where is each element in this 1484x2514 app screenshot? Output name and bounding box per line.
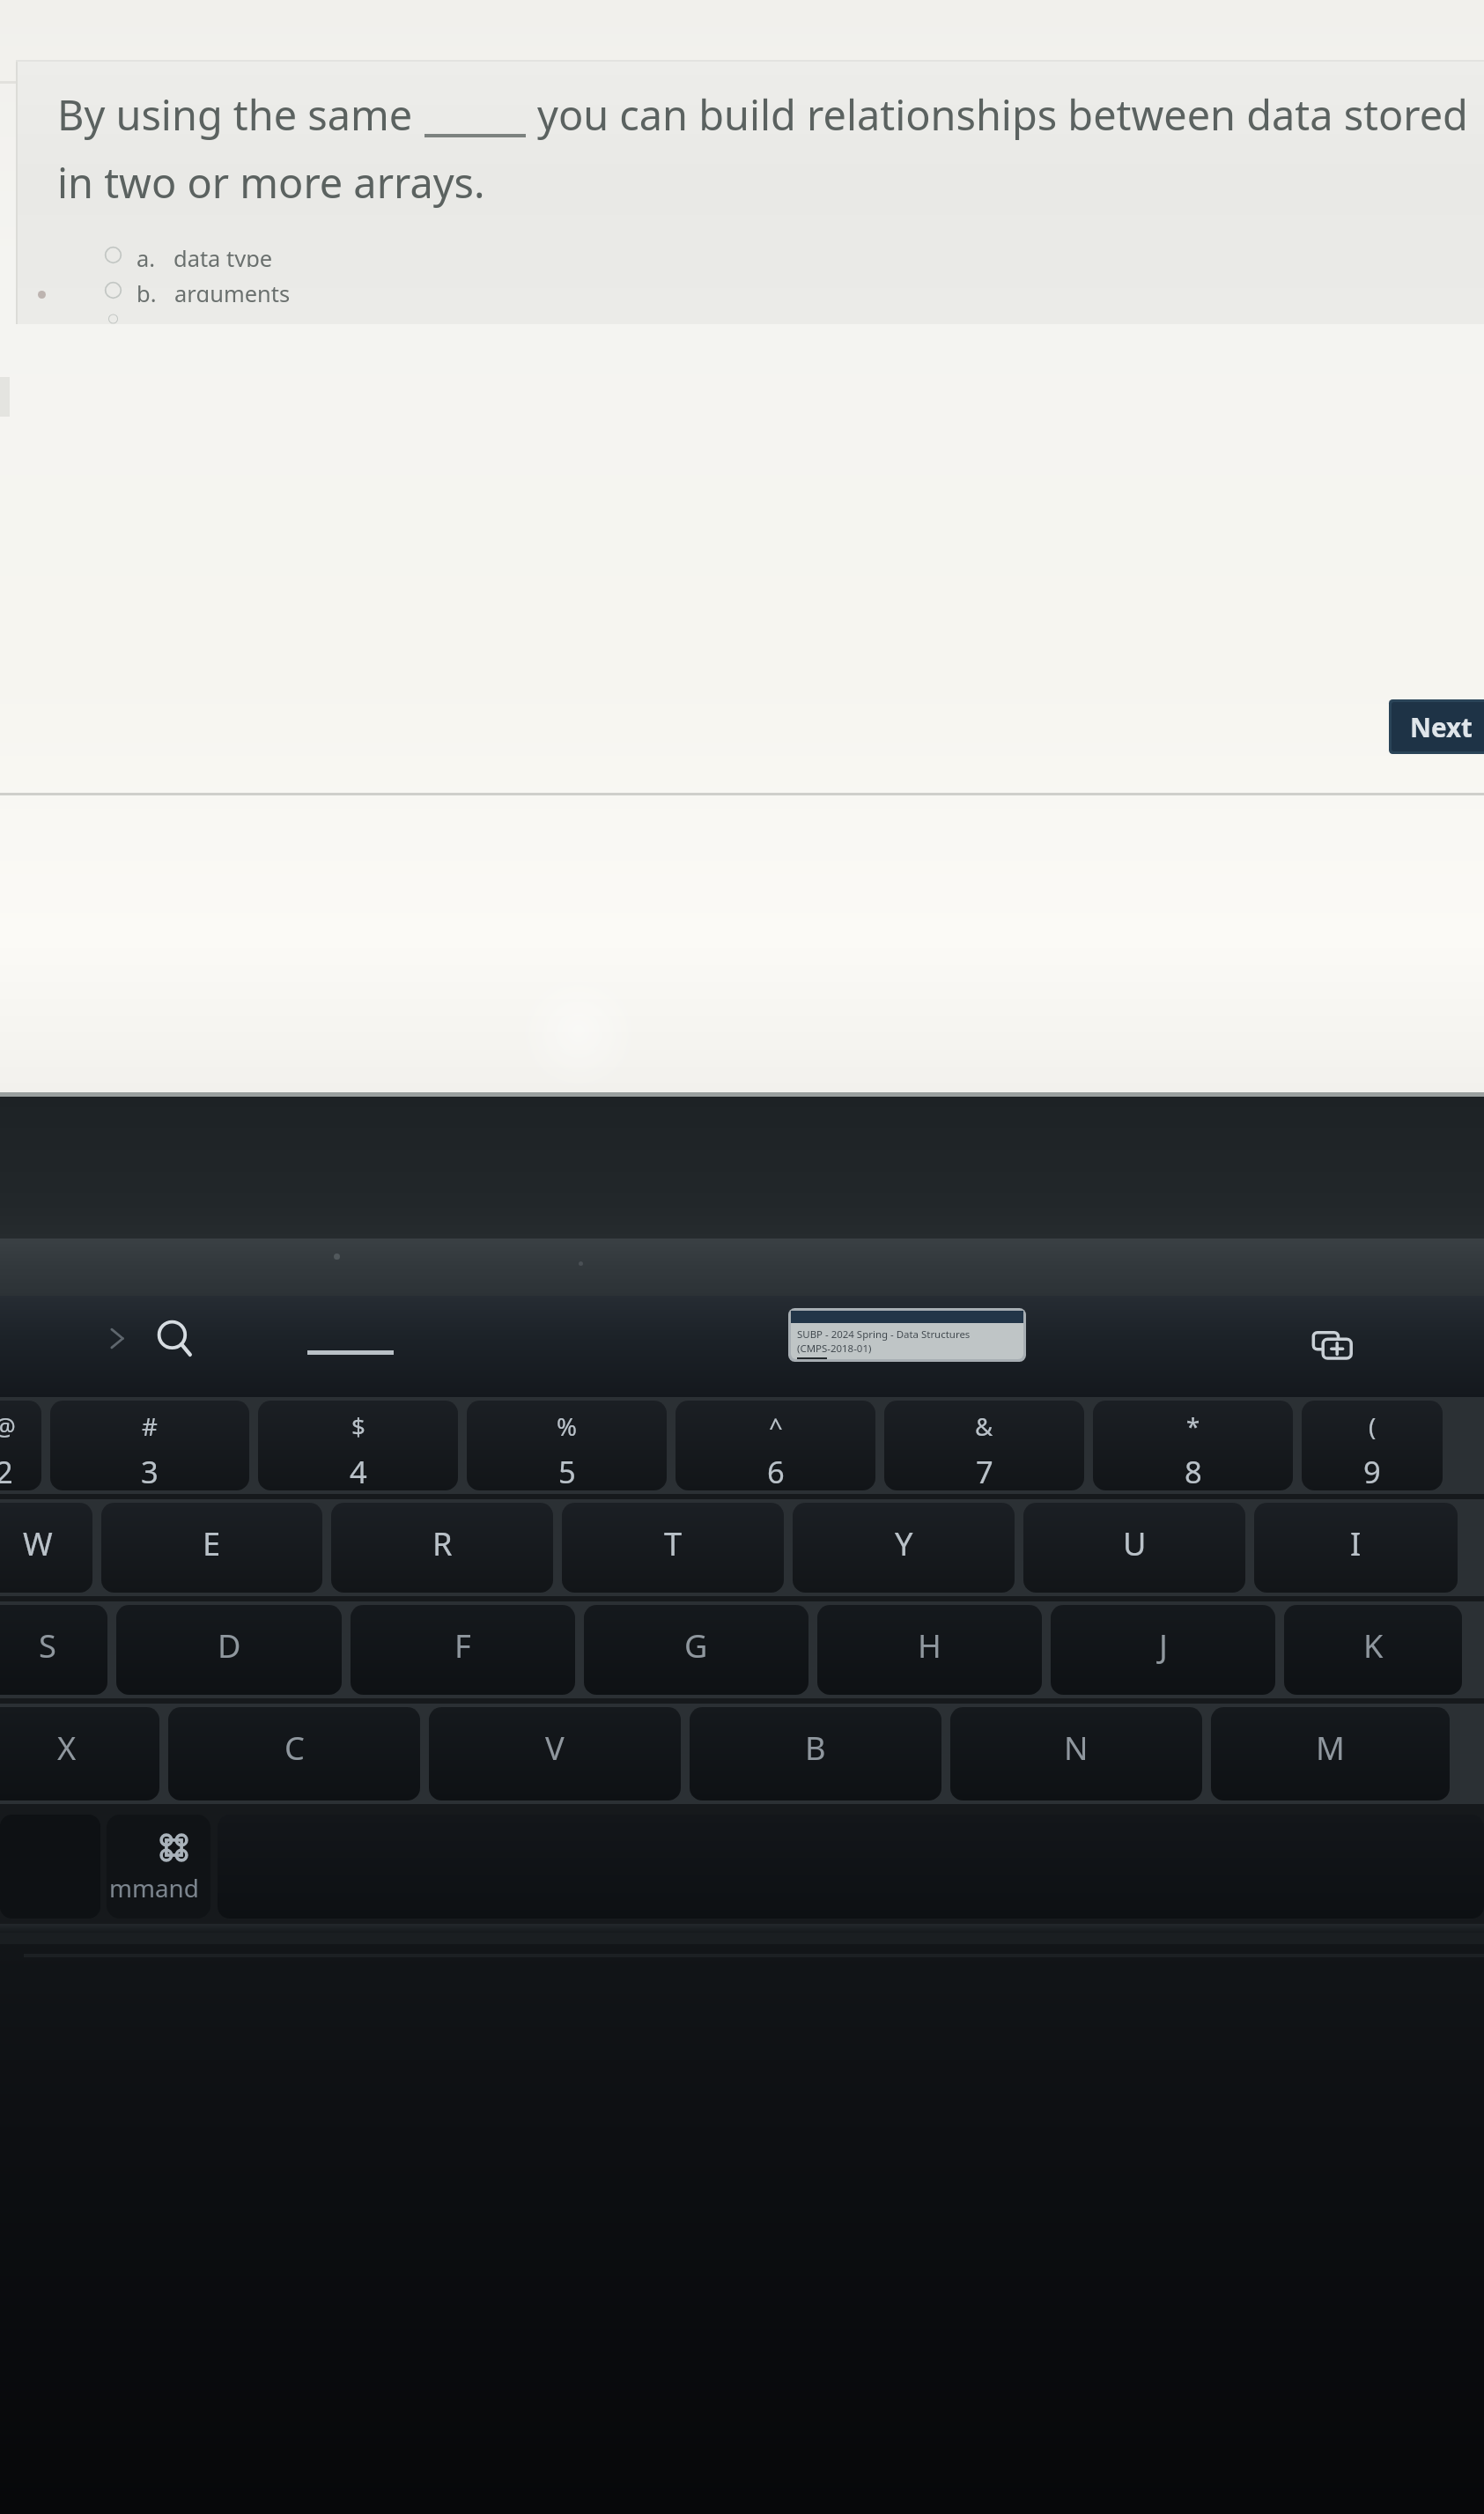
button[interactable]: Key Y	[793, 1503, 1015, 1593]
button[interactable]: c.	[57, 314, 292, 324]
staticText: 7	[976, 1451, 993, 1490]
button[interactable]: Key V	[429, 1707, 681, 1800]
button[interactable]: Key 5	[467, 1401, 667, 1490]
staticText: 6	[767, 1451, 785, 1490]
button[interactable]: Key 6	[676, 1401, 875, 1490]
staticText: @	[0, 1409, 16, 1443]
button[interactable]: Key W	[0, 1503, 92, 1593]
staticText: mmand	[109, 1871, 199, 1904]
staticText: E	[203, 1521, 221, 1564]
button[interactable]: Key C	[168, 1707, 420, 1800]
staticText: R	[432, 1521, 453, 1564]
staticText: you can build relationships between data…	[537, 86, 1468, 143]
staticText: arguments	[174, 278, 291, 302]
staticText: D	[218, 1623, 241, 1667]
button[interactable]: Search	[153, 1317, 198, 1362]
button[interactable]: a.	[57, 243, 273, 267]
staticText: in two or more arrays.	[57, 154, 485, 211]
button[interactable]: Key X	[0, 1707, 159, 1800]
button[interactable]: Key M	[1211, 1707, 1450, 1800]
staticText: 4	[350, 1451, 367, 1490]
staticText: ^	[769, 1409, 783, 1443]
staticText: G	[684, 1623, 708, 1667]
button[interactable]: Key D	[116, 1605, 342, 1695]
button[interactable]: Window preview	[791, 1311, 1023, 1359]
staticText: V	[545, 1726, 565, 1769]
staticText: U	[1123, 1521, 1147, 1564]
staticText: By using the same	[57, 86, 413, 143]
button[interactable]: Key 2	[0, 1401, 41, 1490]
button[interactable]: Next	[1392, 702, 1484, 751]
staticText: 8	[1185, 1451, 1202, 1490]
staticText: SUBP - 2024 Spring - Data Structures (CM…	[797, 1327, 1023, 1355]
staticText: J	[1159, 1623, 1168, 1667]
staticText: data type	[174, 243, 273, 267]
button[interactable]: Key H	[817, 1605, 1042, 1695]
staticText: 5	[558, 1451, 576, 1490]
button[interactable]: Key U	[1023, 1503, 1245, 1593]
staticText: (	[1369, 1409, 1377, 1443]
staticText: %	[557, 1409, 577, 1443]
staticText: C	[284, 1726, 305, 1769]
staticText: *	[1186, 1409, 1200, 1443]
button[interactable]: Key I	[1254, 1503, 1458, 1593]
staticText: 9	[1363, 1451, 1381, 1490]
staticText: $	[351, 1409, 365, 1443]
staticText: T	[664, 1521, 683, 1564]
button[interactable]: Key N	[950, 1707, 1202, 1800]
button[interactable]: Key B	[690, 1707, 941, 1800]
staticText: Y	[895, 1521, 913, 1564]
button[interactable]: Key K	[1284, 1605, 1462, 1695]
button[interactable]: b.	[57, 278, 291, 302]
button[interactable]: Command key	[107, 1815, 210, 1919]
staticText: #	[142, 1409, 158, 1443]
staticText: Next	[1410, 709, 1473, 744]
button[interactable]: New tab	[1306, 1318, 1362, 1374]
staticText: b.	[137, 278, 157, 302]
button[interactable]: Key 7	[884, 1401, 1084, 1490]
staticText: &	[975, 1409, 993, 1443]
button[interactable]: Key F	[351, 1605, 575, 1695]
staticText: N	[1064, 1726, 1089, 1769]
staticText: I	[1350, 1521, 1362, 1564]
button[interactable]: Key 9	[1302, 1401, 1443, 1490]
staticText: K	[1363, 1623, 1384, 1667]
button[interactable]: Key J	[1051, 1605, 1275, 1695]
staticText: F	[454, 1623, 471, 1667]
staticText: 3	[141, 1451, 159, 1490]
button[interactable]: Key S	[0, 1605, 107, 1695]
button[interactable]: Expand control strip	[101, 1322, 134, 1355]
button[interactable]: Key E	[101, 1503, 322, 1593]
staticText: 2	[0, 1451, 13, 1490]
button[interactable]: Key 3	[50, 1401, 249, 1490]
staticText: W	[23, 1521, 53, 1564]
button[interactable]: Key 4	[258, 1401, 458, 1490]
staticText: X	[57, 1726, 77, 1769]
button[interactable]: Key R	[331, 1503, 553, 1593]
button[interactable]: Key T	[562, 1503, 784, 1593]
staticText: M	[1316, 1726, 1345, 1769]
staticText: S	[39, 1623, 56, 1667]
staticText: a.	[137, 243, 156, 267]
button[interactable]: Key 8	[1093, 1401, 1293, 1490]
staticText: B	[805, 1726, 826, 1769]
button[interactable]: Key G	[584, 1605, 808, 1695]
staticText: H	[918, 1623, 941, 1667]
